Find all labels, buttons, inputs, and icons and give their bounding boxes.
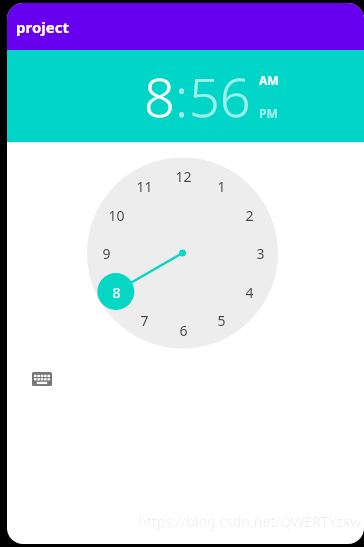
staticText: 56 xyxy=(189,59,251,133)
button[interactable]: project xyxy=(7,3,364,50)
button[interactable]: PM xyxy=(259,105,278,121)
staticText: PM xyxy=(259,105,278,121)
button[interactable]: 8 xyxy=(102,282,130,302)
staticText: project xyxy=(16,17,69,37)
staticText: 8 xyxy=(112,283,121,302)
button[interactable]: 1 xyxy=(207,176,235,196)
button[interactable]: 9 xyxy=(92,243,120,263)
staticText: 12 xyxy=(175,167,192,186)
staticText: 10 xyxy=(108,206,125,225)
button[interactable]: AM xyxy=(259,72,279,88)
staticText: 8 xyxy=(144,59,175,133)
button[interactable]: Switch to keyboard input xyxy=(29,368,55,390)
staticText: 1 xyxy=(217,177,226,196)
button[interactable]: 12 xyxy=(169,166,197,186)
button[interactable]: 11 xyxy=(130,176,158,196)
staticText: 6 xyxy=(179,321,188,340)
button[interactable]: 2 xyxy=(235,205,263,225)
staticText: 11 xyxy=(136,177,153,196)
button[interactable]: 5 xyxy=(207,310,235,330)
button[interactable]: Clock dial, select hour xyxy=(7,142,364,397)
button[interactable]: 7 xyxy=(130,310,158,330)
staticText: : xyxy=(175,59,189,133)
button[interactable]: 4 xyxy=(235,282,263,302)
button[interactable]: 10 xyxy=(102,205,130,225)
staticText: 2 xyxy=(245,206,254,225)
staticText: 7 xyxy=(140,311,149,330)
staticText: https://blog.csdn.net/QWERTYzxw xyxy=(138,512,362,531)
staticText: 5 xyxy=(217,311,226,330)
button[interactable]: 8 xyxy=(144,59,175,133)
staticText: 4 xyxy=(245,283,254,302)
button[interactable]: 56 xyxy=(189,59,251,133)
staticText: AM xyxy=(259,72,279,88)
button[interactable]: 3 xyxy=(246,243,274,263)
staticText: 9 xyxy=(102,244,111,263)
button[interactable]: 6 xyxy=(169,320,197,340)
staticText: 3 xyxy=(256,244,265,263)
